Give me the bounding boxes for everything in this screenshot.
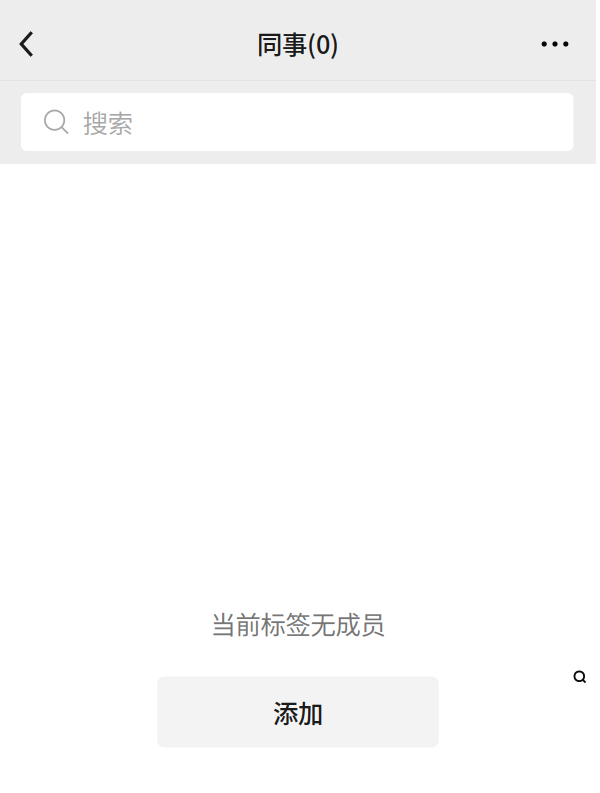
button[interactable]: Search: [567, 664, 593, 690]
button[interactable]: 添加: [157, 676, 439, 747]
button[interactable]: 搜索: [21, 93, 573, 151]
staticText: 搜索: [83, 104, 133, 140]
staticText: 添加: [273, 694, 323, 730]
button[interactable]: Back: [0, 8, 53, 80]
staticText: 当前标签无成员: [210, 605, 385, 641]
staticText: 同事(0): [257, 25, 339, 61]
button[interactable]: More: [514, 8, 596, 80]
